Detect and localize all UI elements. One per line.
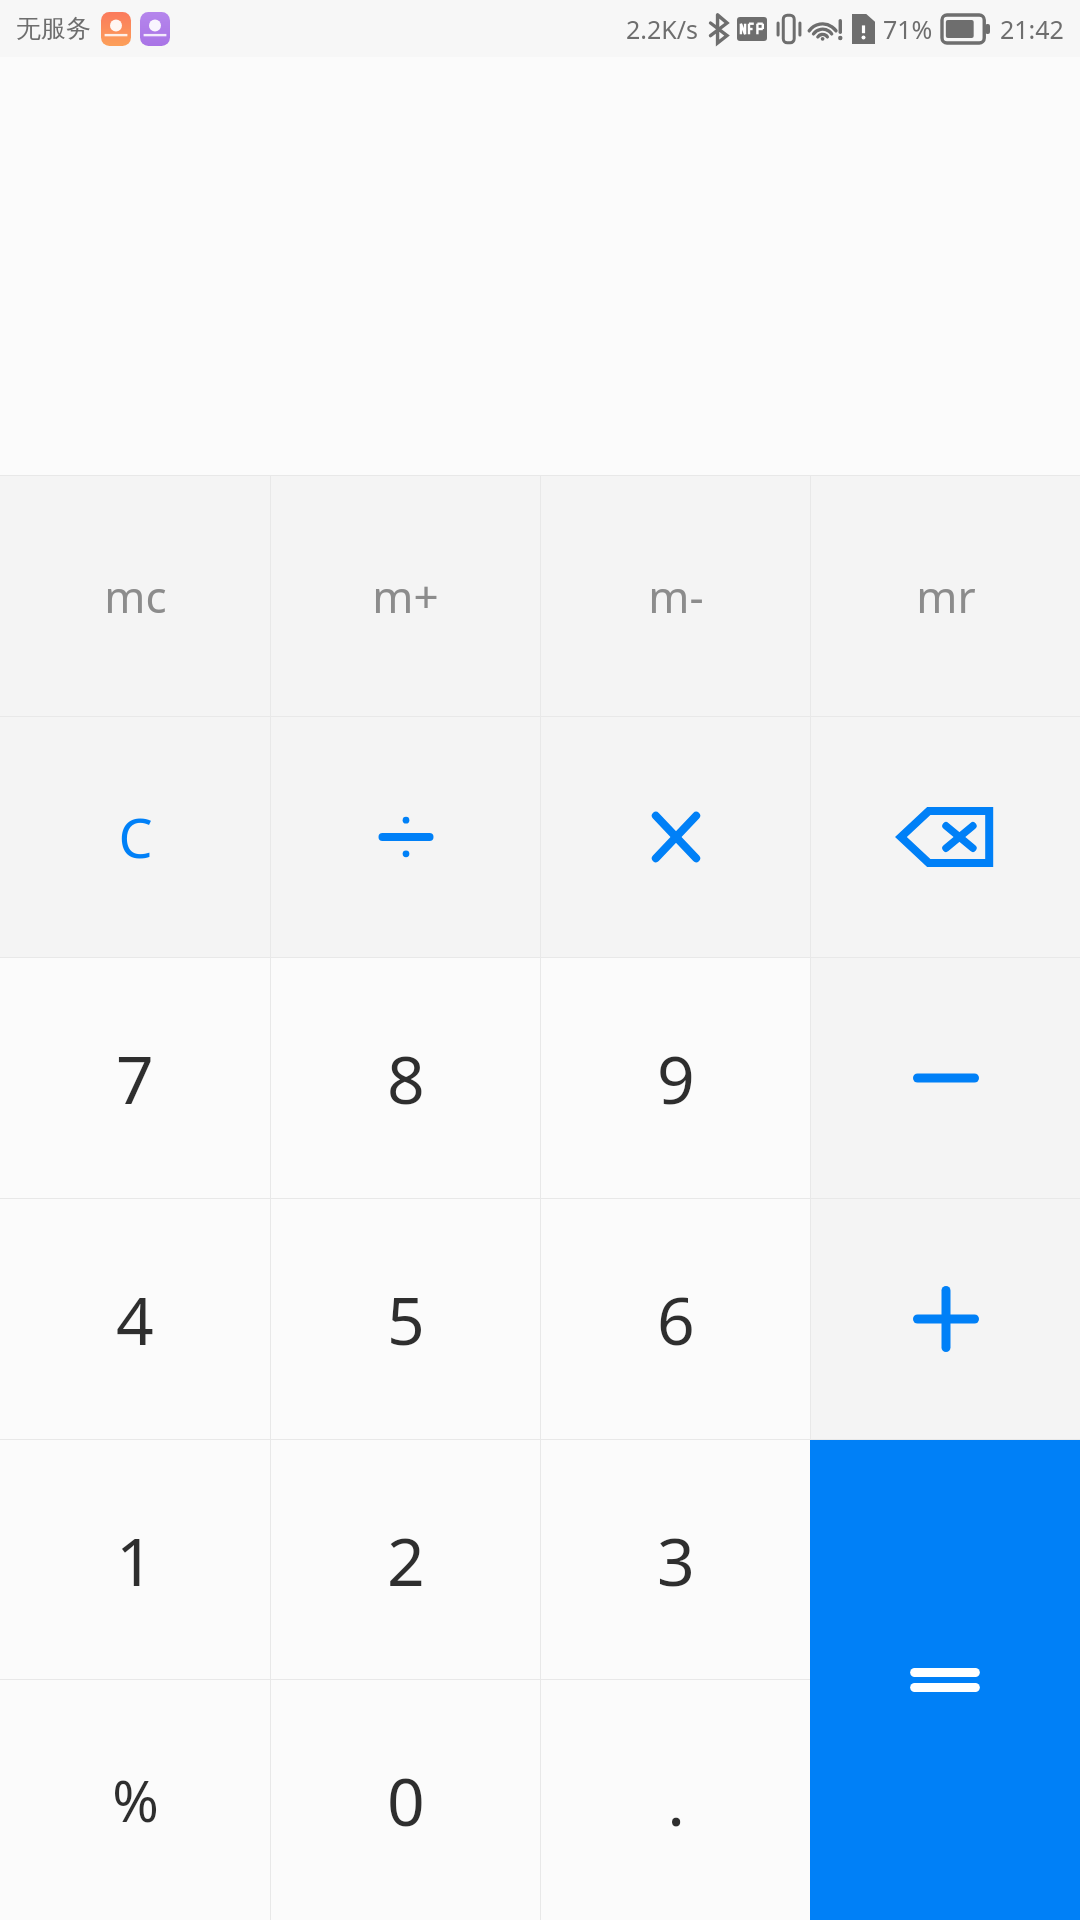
- button[interactable]: 5: [271, 1199, 540, 1439]
- button[interactable]: C: [0, 717, 270, 957]
- button[interactable]: Plus: [811, 1199, 1080, 1439]
- staticText: 7: [116, 1033, 154, 1123]
- button[interactable]: Backspace: [811, 717, 1080, 957]
- button[interactable]: 1: [0, 1440, 270, 1679]
- staticText: 无服务: [16, 13, 91, 44]
- staticText: mr: [916, 566, 976, 626]
- staticText: mc: [104, 566, 167, 626]
- button[interactable]: 9: [541, 958, 810, 1198]
- staticText: 4: [116, 1274, 154, 1364]
- button[interactable]: 0: [271, 1680, 540, 1920]
- button[interactable]: 3: [541, 1440, 810, 1679]
- button[interactable]: 7: [0, 958, 270, 1198]
- staticText: 0: [387, 1755, 425, 1845]
- staticText: 71%: [883, 12, 933, 46]
- staticText: 2.2K/s: [626, 12, 699, 46]
- staticText: 1: [116, 1515, 154, 1605]
- staticText: 9: [657, 1033, 695, 1123]
- staticText: 6: [657, 1274, 695, 1364]
- button[interactable]: Multiply: [541, 717, 810, 957]
- staticText: 5: [387, 1274, 425, 1364]
- staticText: 21:42: [1000, 12, 1064, 46]
- staticText: 2: [387, 1515, 425, 1605]
- button[interactable]: m+: [271, 476, 540, 716]
- button[interactable]: Equals: [810, 1440, 1080, 1920]
- staticText: m-: [648, 566, 704, 626]
- staticText: .: [667, 1755, 685, 1845]
- staticText: 3: [657, 1515, 695, 1605]
- button[interactable]: 8: [271, 958, 540, 1198]
- button[interactable]: 6: [541, 1199, 810, 1439]
- button[interactable]: %: [0, 1680, 270, 1920]
- button[interactable]: 2: [271, 1440, 540, 1679]
- button[interactable]: mr: [811, 476, 1080, 716]
- button[interactable]: Divide: [271, 717, 540, 957]
- button[interactable]: 4: [0, 1199, 270, 1439]
- staticText: %: [112, 1762, 159, 1838]
- button[interactable]: .: [541, 1680, 810, 1920]
- staticText: 8: [387, 1033, 425, 1123]
- staticText: C: [118, 800, 153, 874]
- button[interactable]: Minus: [811, 958, 1080, 1198]
- button[interactable]: mc: [0, 476, 270, 716]
- staticText: m+: [372, 566, 439, 626]
- button[interactable]: m-: [541, 476, 810, 716]
